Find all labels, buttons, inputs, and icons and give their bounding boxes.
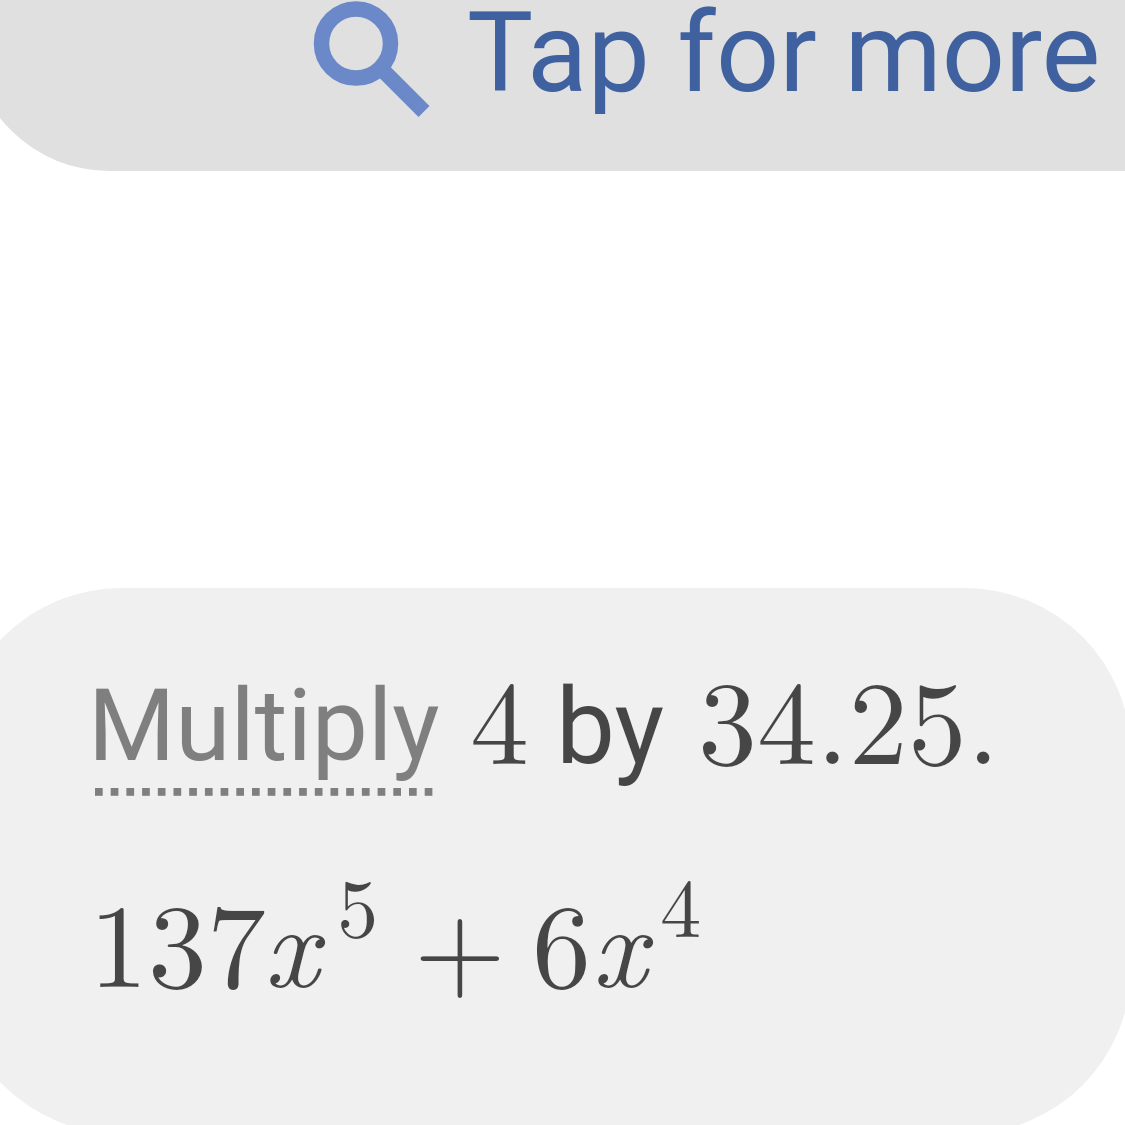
button[interactable]: Tap for more [0, 0, 1125, 171]
button[interactable] [88, 680, 440, 798]
